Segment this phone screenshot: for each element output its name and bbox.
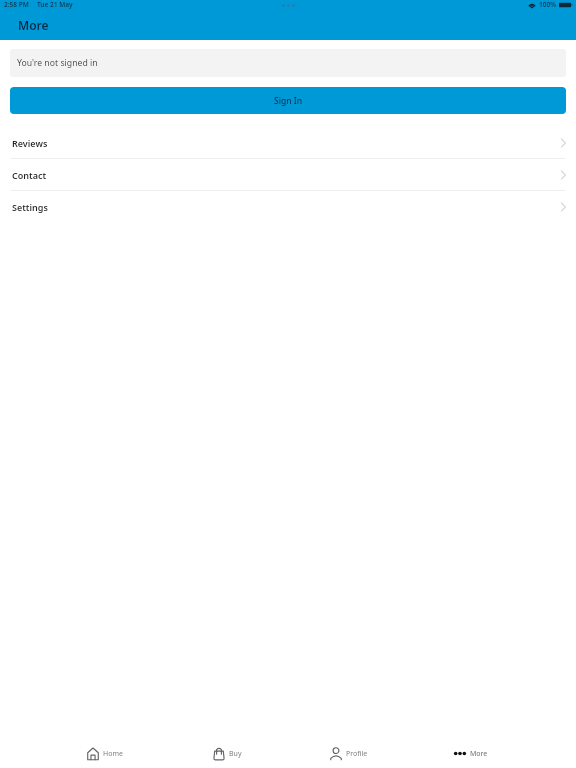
- staticText: Settings: [12, 201, 48, 213]
- staticText: Home: [103, 749, 123, 759]
- other: Open Contact: [561, 171, 566, 179]
- button[interactable]: Contact: [0, 159, 576, 191]
- staticText: Contact: [12, 169, 47, 181]
- staticText: 100%: [539, 0, 556, 9]
- button[interactable]: Settings: [0, 191, 576, 222]
- staticText: Tue 21 May: [37, 0, 73, 9]
- staticText: 2:58 PM: [4, 0, 29, 9]
- button[interactable]: Sign In: [10, 87, 566, 114]
- staticText: Buy: [229, 749, 242, 759]
- staticText: Sign In: [274, 95, 303, 107]
- button[interactable]: Home: [44, 739, 166, 768]
- staticText: You're not signed in: [17, 57, 98, 69]
- button[interactable]: Buy: [166, 739, 288, 768]
- staticText: Profile: [346, 749, 368, 759]
- other: Open Settings: [561, 203, 566, 211]
- other: Open Reviews: [561, 139, 566, 147]
- staticText: More: [18, 17, 49, 33]
- button[interactable]: Profile: [288, 739, 410, 768]
- button[interactable]: More: [410, 739, 532, 768]
- staticText: Reviews: [12, 137, 48, 149]
- button[interactable]: Reviews: [0, 127, 576, 159]
- staticText: More: [470, 749, 488, 759]
